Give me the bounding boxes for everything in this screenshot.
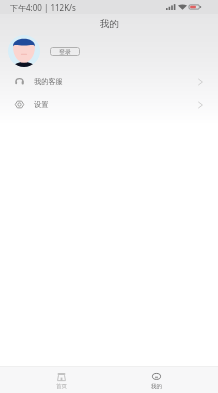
button[interactable]: 我的客服 — [0, 70, 218, 93]
staticText: 我的客服 — [34, 77, 63, 86]
staticText: 我的 — [151, 383, 162, 390]
button[interactable]: 登录 — [50, 47, 80, 56]
staticText: 首页 — [56, 383, 67, 390]
staticText: 我的 — [100, 18, 119, 30]
staticText: 登录 — [59, 48, 71, 56]
button[interactable]: Avatar — [8, 35, 40, 67]
button[interactable]: 我的 — [109, 367, 204, 393]
staticText: 设置 — [34, 100, 49, 109]
staticText: 下午4:00 | 112K/s — [10, 2, 76, 13]
button[interactable]: 首页 — [14, 367, 109, 393]
button[interactable]: 设置 — [0, 93, 218, 116]
